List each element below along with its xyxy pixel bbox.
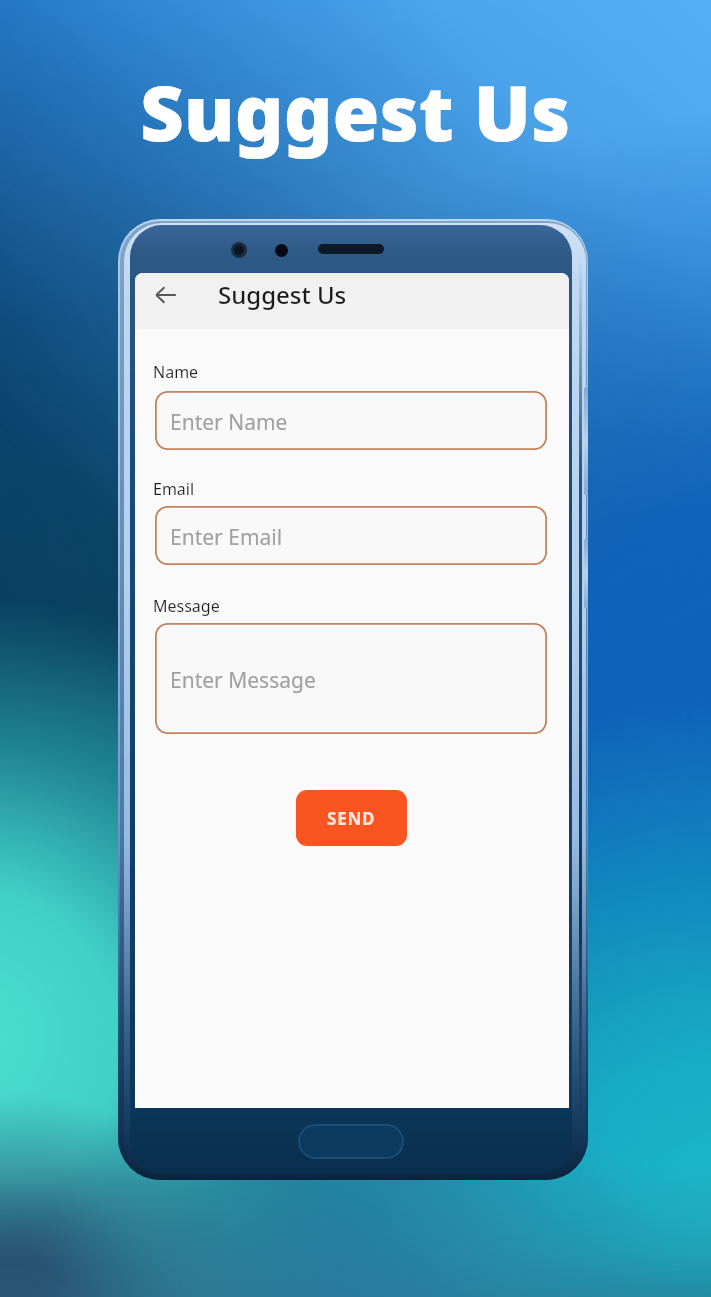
button[interactable]: Back [142,273,190,319]
staticText: SEND [327,807,376,830]
staticText: Email [153,478,195,500]
button[interactable]: Enter Name [155,391,547,450]
button[interactable]: SEND [296,790,407,846]
button[interactable]: Enter Email [155,506,547,565]
staticText: Suggest Us [140,60,571,164]
button[interactable]: Enter Message [155,623,547,734]
staticText: Name [153,361,199,383]
staticText: Suggest Us [218,278,347,311]
staticText: Message [153,595,220,617]
staticText: Enter Email [170,523,283,552]
staticText: Enter Name [170,408,288,437]
staticText: Enter Message [170,666,316,695]
